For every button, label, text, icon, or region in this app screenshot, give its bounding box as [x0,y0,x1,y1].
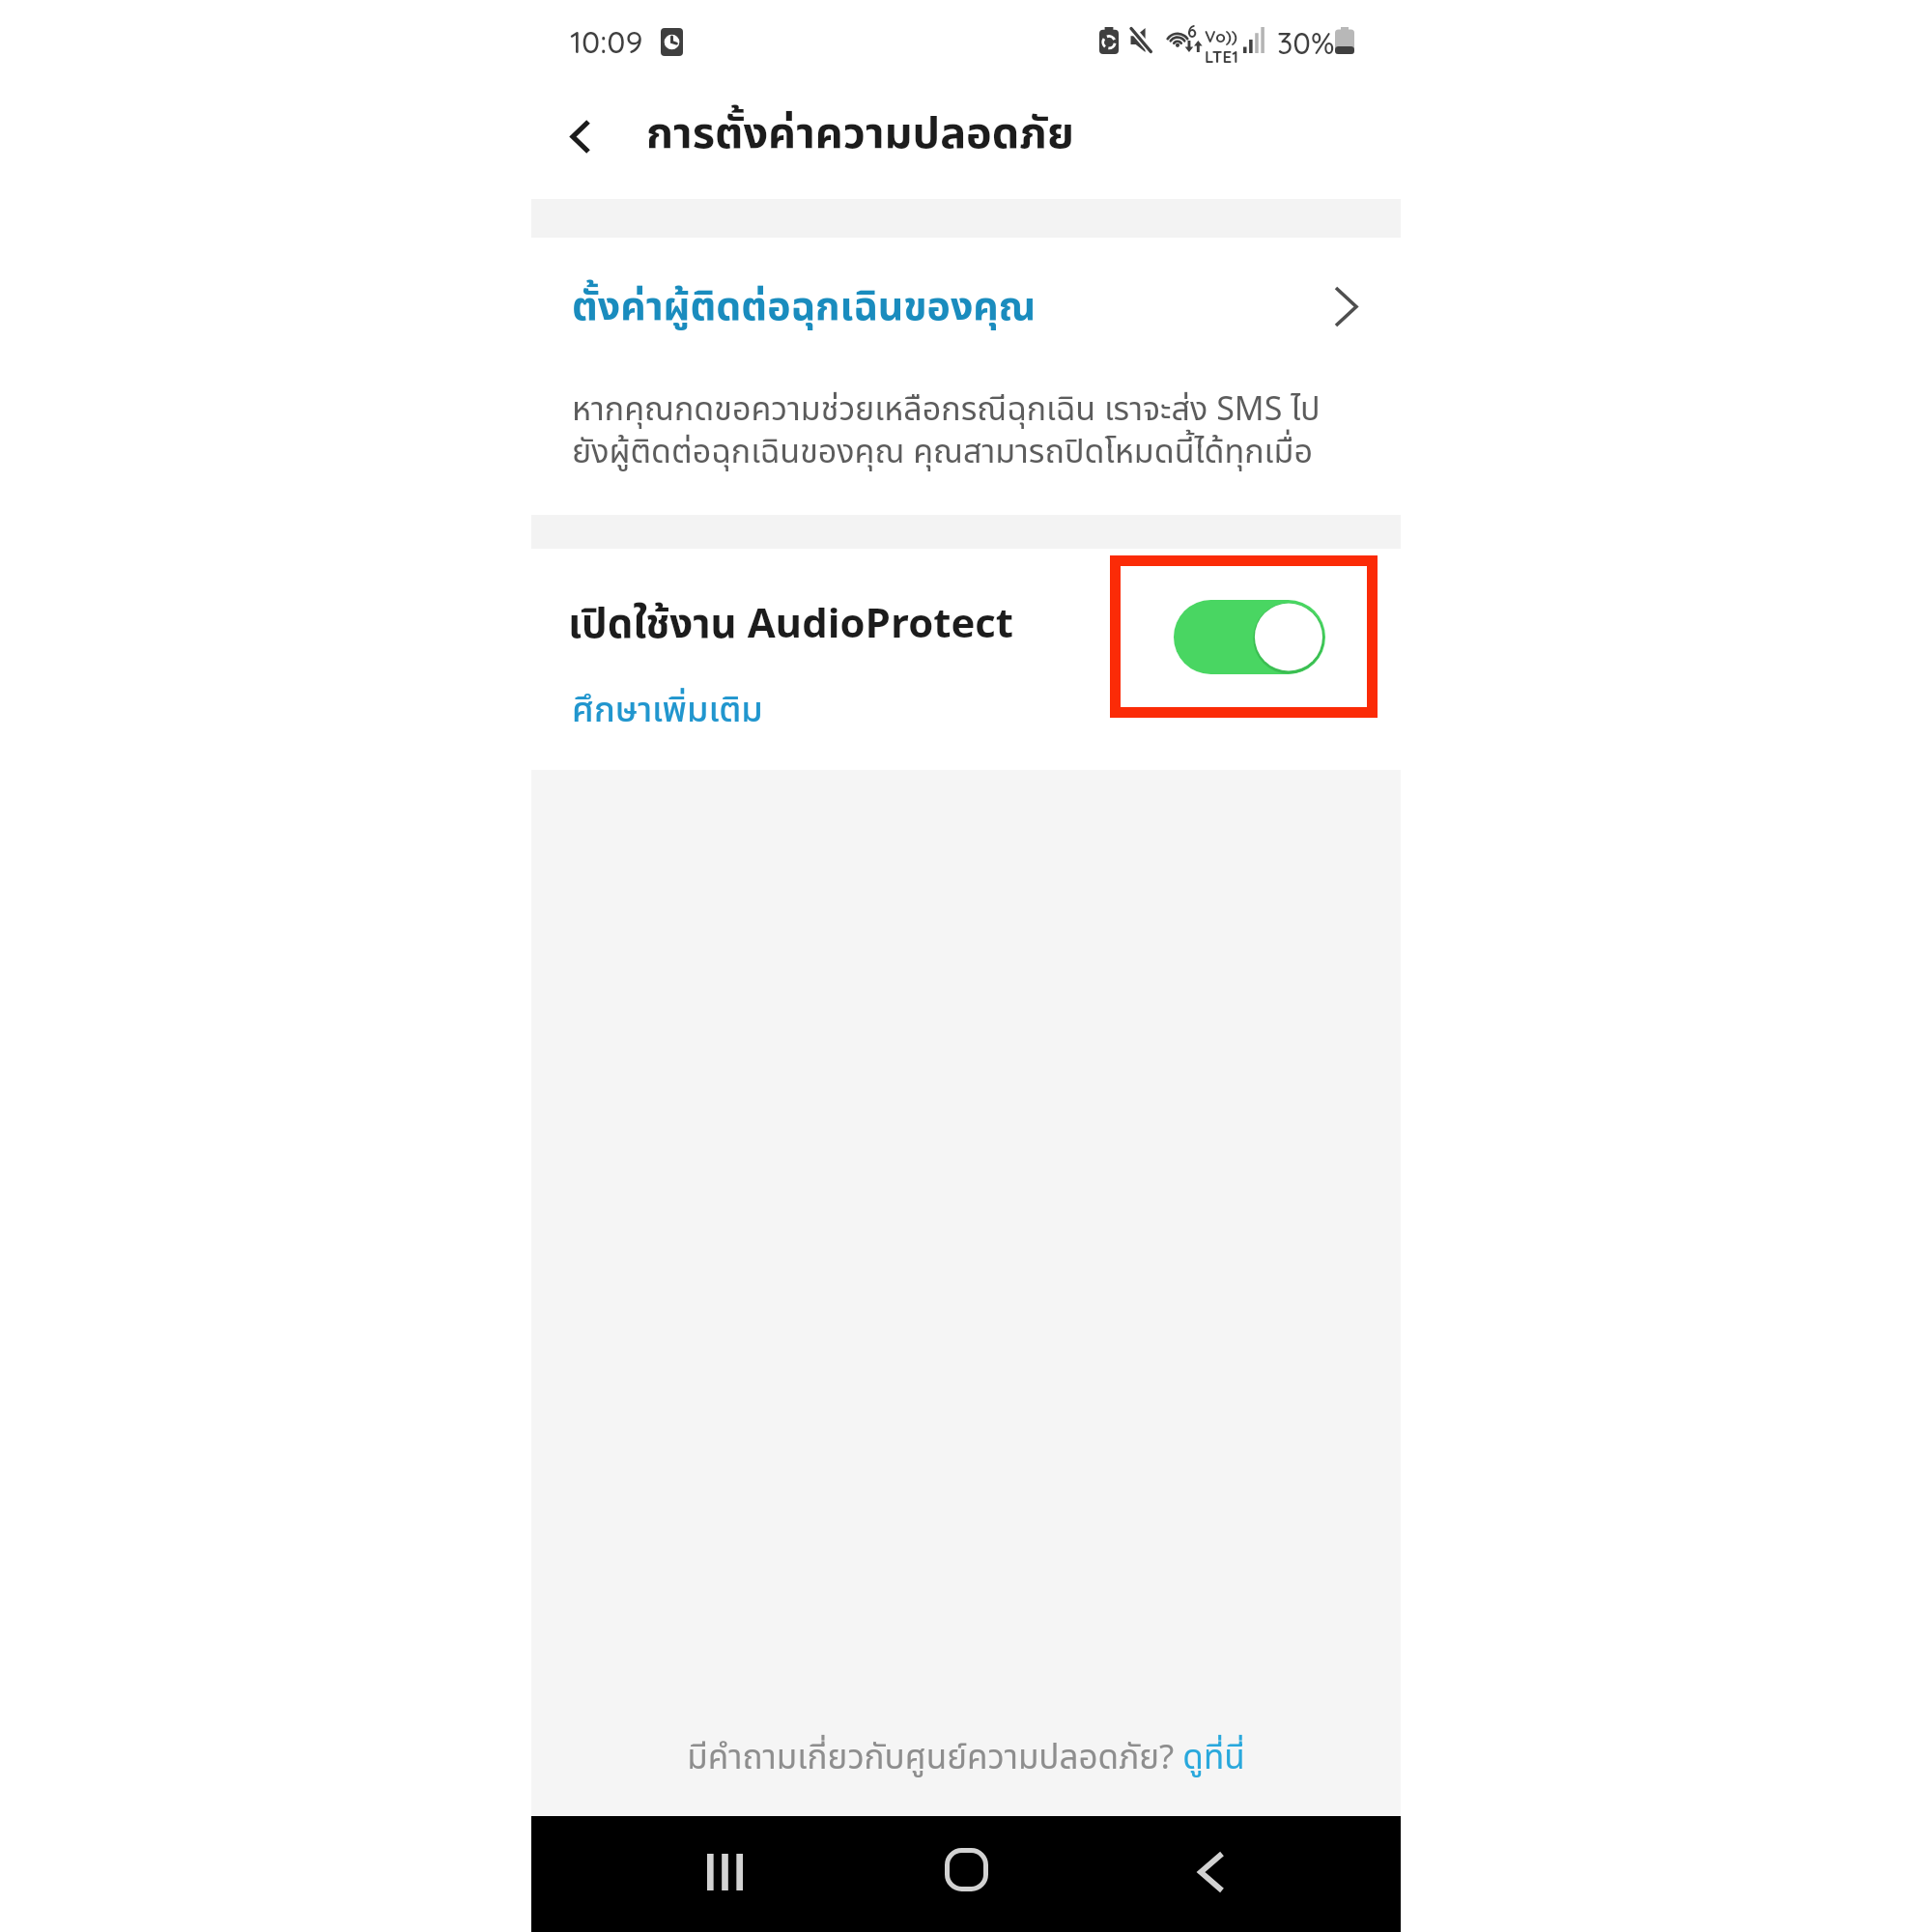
button[interactable]: Recent apps [676,1824,773,1920]
button[interactable]: Back [552,107,610,165]
staticText: หากคุณกดขอความช่วยเหลือกรณีฉุกเฉิน เราจะ… [572,385,1321,477]
staticText: LTE1 [1205,46,1238,67]
staticText: 10:09 [570,22,643,61]
button[interactable]: Back [1163,1824,1260,1920]
button[interactable]: Enable AudioProtect [1174,600,1325,674]
staticText: ตั้งค่าผู้ติดต่อฉุกเฉินของคุณ [572,277,1037,337]
staticText: 30% [1277,24,1335,62]
button[interactable]: ศึกษาเพิ่มเติม [572,685,763,737]
staticText: มีคำถามเกี่ยวกับศูนย์ความปลอดภัย? ดูที่น… [687,1733,1245,1784]
staticText: เปิดใช้งาน AudioProtect [568,594,1014,655]
staticText: Vo)) [1205,26,1237,46]
button[interactable]: ตั้งค่าผู้ติดต่อฉุกเฉินของคุณ [531,238,1401,363]
staticText: 6 [1187,20,1197,43]
button[interactable]: Home [918,1821,1014,1918]
staticText: การตั้งค่าความปลอดภัย [646,101,1074,167]
